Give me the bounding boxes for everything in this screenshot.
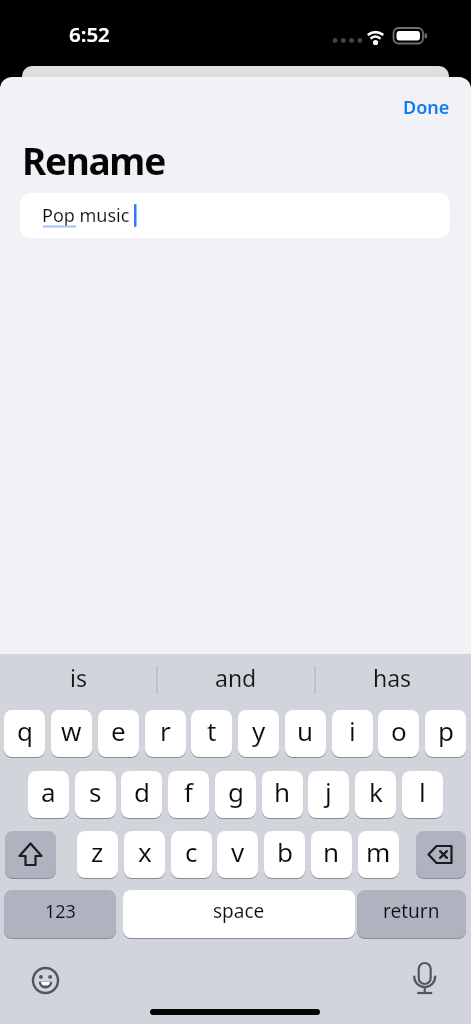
button[interactable]: return xyxy=(357,890,466,938)
staticText: q xyxy=(17,713,33,748)
staticText: b xyxy=(277,834,293,869)
staticText: h xyxy=(274,774,291,809)
staticText: Done xyxy=(403,95,450,120)
button[interactable]: u xyxy=(285,710,326,757)
button[interactable]: e xyxy=(98,710,139,757)
staticText: s xyxy=(89,774,102,809)
staticText: n xyxy=(323,834,340,869)
staticText: Pop music xyxy=(42,203,130,228)
button[interactable]: has xyxy=(314,654,471,700)
button[interactable]: m xyxy=(358,831,399,878)
staticText: has xyxy=(373,662,412,693)
staticText: c xyxy=(185,834,198,869)
button[interactable]: x xyxy=(124,831,165,878)
staticText: t xyxy=(207,713,217,748)
staticText: space xyxy=(213,898,265,924)
staticText: o xyxy=(391,713,407,748)
button[interactable]: f xyxy=(168,771,209,818)
button[interactable]: i xyxy=(332,710,373,757)
staticText: m xyxy=(366,834,391,869)
button[interactable]: Done xyxy=(403,95,450,120)
staticText: j xyxy=(325,774,332,809)
button[interactable]: is xyxy=(0,654,157,700)
button[interactable]: j xyxy=(308,771,349,818)
button[interactable]: c xyxy=(171,831,212,878)
staticText: e xyxy=(111,713,126,748)
staticText: w xyxy=(61,713,82,748)
staticText: r xyxy=(160,713,171,748)
staticText: 123 xyxy=(45,899,76,924)
button[interactable]: d xyxy=(121,771,162,818)
button[interactable]: Pop music xyxy=(20,193,450,238)
staticText: p xyxy=(438,713,454,748)
staticText: g xyxy=(228,774,244,809)
button[interactable]: o xyxy=(378,710,419,757)
staticText: d xyxy=(134,774,150,809)
staticText: 6:52 xyxy=(69,20,110,48)
button[interactable] xyxy=(5,831,56,878)
staticText: x xyxy=(138,834,152,869)
button[interactable]: h xyxy=(262,771,303,818)
staticText: i xyxy=(349,713,356,748)
button[interactable]: z xyxy=(77,831,118,878)
staticText: z xyxy=(91,834,104,869)
button[interactable]: b xyxy=(264,831,305,878)
button[interactable]: p xyxy=(425,710,466,757)
button[interactable] xyxy=(416,831,466,878)
staticText: return xyxy=(383,898,440,924)
staticText: Rename xyxy=(22,135,165,185)
button[interactable]: n xyxy=(311,831,352,878)
staticText: a xyxy=(41,774,56,809)
button[interactable]: y xyxy=(238,710,279,757)
button[interactable]: r xyxy=(145,710,186,757)
button[interactable]: space xyxy=(123,890,355,938)
button[interactable]: q xyxy=(4,710,45,757)
button[interactable]: s xyxy=(75,771,116,818)
button[interactable]: w xyxy=(51,710,92,757)
button[interactable]: g xyxy=(215,771,256,818)
button[interactable]: k xyxy=(355,771,396,818)
staticText: f xyxy=(184,774,193,809)
button[interactable]: and xyxy=(157,654,314,700)
staticText: v xyxy=(231,834,245,869)
button[interactable]: a xyxy=(28,771,69,818)
staticText: k xyxy=(369,774,383,809)
button[interactable]: v xyxy=(217,831,258,878)
staticText: y xyxy=(252,713,266,748)
button[interactable]: l xyxy=(402,771,443,818)
staticText: u xyxy=(297,713,314,748)
staticText: and xyxy=(215,662,257,693)
button[interactable]: t xyxy=(191,710,232,757)
staticText: is xyxy=(70,662,87,693)
button[interactable]: 123 xyxy=(4,890,116,938)
staticText: l xyxy=(419,774,426,809)
